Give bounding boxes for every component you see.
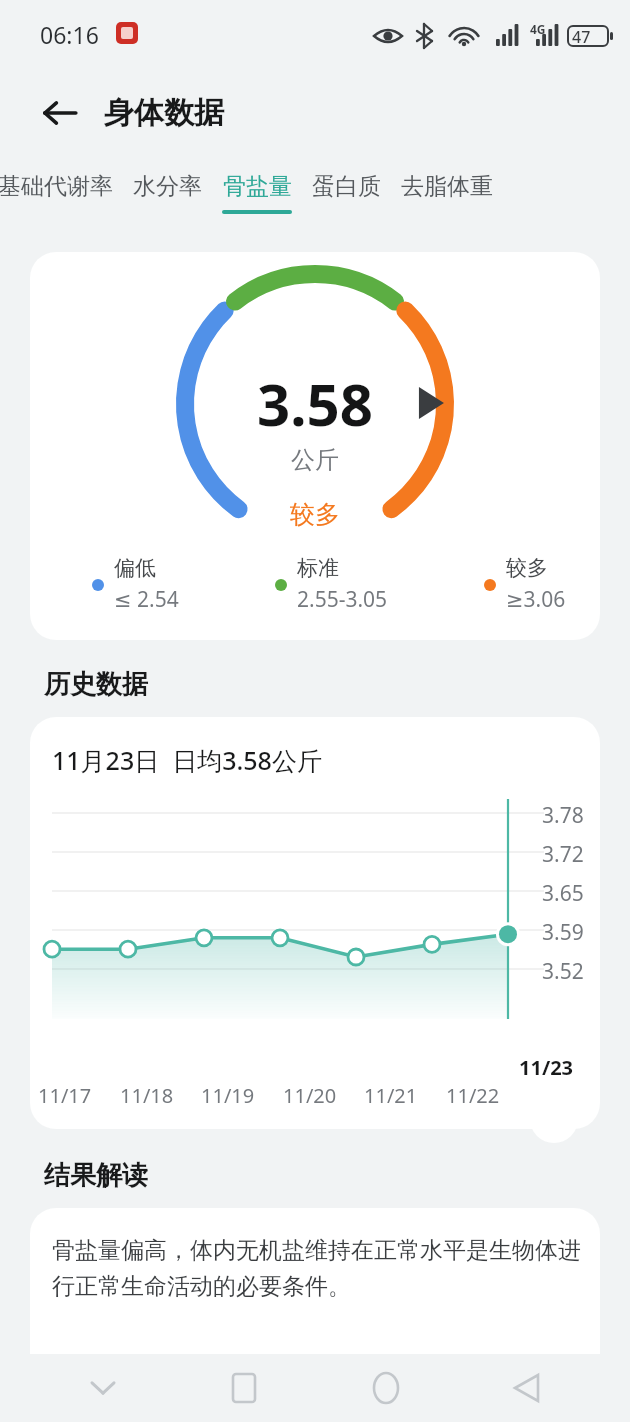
staticText: 2.55-3.05 (297, 585, 388, 614)
staticText: 06:16 (40, 19, 99, 50)
button[interactable]: 去脂体重 (401, 160, 493, 210)
staticText: 3.59 (542, 918, 584, 947)
staticText: 骨盐量偏高，体内无机盐维持在正常水平是生物体进行正常生命活动的必要条件。 (52, 1236, 584, 1301)
staticText: 11月23日 日均3.58公斤 (52, 743, 322, 777)
staticText: 身体数据 (104, 94, 224, 132)
staticText: ≤ 2.54 (114, 585, 179, 614)
staticText: 去脂体重 (401, 172, 493, 201)
staticText: 3.52 (542, 957, 584, 986)
staticText: 3.58 (257, 364, 373, 443)
staticText: 11/22 (446, 1082, 500, 1109)
staticText: 3.65 (542, 879, 584, 908)
staticText: 3.72 (542, 840, 584, 869)
staticText: 标准 (297, 555, 339, 581)
staticText: 4G (530, 21, 546, 37)
staticText: 基础代谢率 (0, 172, 113, 201)
button[interactable]: 基础代谢率 (0, 160, 113, 210)
staticText: 骨盐量 (223, 172, 292, 201)
staticText: 较多 (506, 555, 548, 581)
staticText: 11/23 (519, 1054, 574, 1081)
button[interactable]: 返回 (488, 1354, 566, 1422)
staticText: 11/21 (364, 1082, 418, 1109)
staticText: 11/20 (283, 1082, 337, 1109)
staticText: 较多 (290, 499, 340, 530)
button[interactable]: 水分率 (133, 160, 202, 210)
button[interactable]: 收起 (64, 1354, 142, 1422)
staticText: 历史数据 (44, 668, 148, 701)
staticText: 47 (572, 26, 591, 48)
button[interactable]: 最近任务 (205, 1354, 283, 1422)
button[interactable]: 拖动手柄 (530, 1095, 578, 1143)
staticText: 公斤 (291, 445, 339, 475)
staticText: 偏低 (114, 555, 156, 581)
staticText: 11/19 (201, 1082, 255, 1109)
staticText: 3.78 (542, 801, 584, 830)
staticText: 11/18 (120, 1082, 174, 1109)
staticText: 11/17 (38, 1082, 92, 1109)
staticText: 水分率 (133, 172, 202, 201)
button[interactable]: 主屏幕 (347, 1354, 425, 1422)
button[interactable]: 蛋白质 (312, 160, 381, 210)
staticText: ≥3.06 (506, 585, 566, 614)
button[interactable]: 返回 (28, 81, 92, 145)
staticText: 结果解读 (44, 1159, 148, 1192)
button[interactable]: 骨盐量 (222, 160, 292, 214)
staticText: 蛋白质 (312, 172, 381, 201)
